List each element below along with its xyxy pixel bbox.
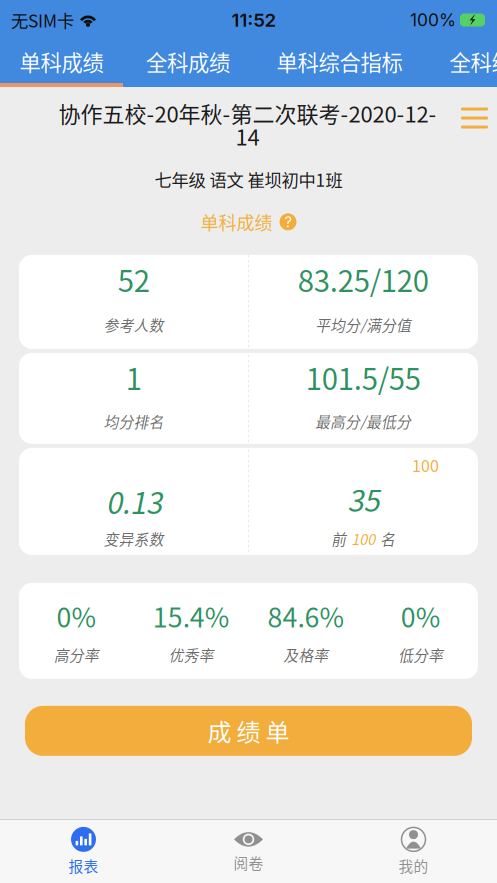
staticText: 0% [401, 596, 441, 635]
staticText: 平均分/满分值 [315, 314, 411, 335]
staticText: 最高分/最低分 [315, 410, 411, 432]
button[interactable]: 全科综合指标 [426, 40, 497, 83]
staticText: 单科成绩 [19, 46, 103, 77]
staticText: 全科综合指标 [449, 46, 497, 77]
button[interactable]: 报表 [1, 820, 166, 882]
staticText: 101.5/55 [306, 356, 421, 398]
button[interactable]: 单科成绩 [0, 40, 123, 83]
staticText: 35 [347, 478, 379, 520]
staticText: 单科综合指标 [276, 46, 402, 77]
staticText: 变异系数 [104, 528, 164, 549]
button[interactable]: 单科综合指标 [253, 40, 426, 83]
staticText: 100% [410, 9, 456, 30]
staticText: 无SIM卡 [11, 7, 74, 33]
staticText: 84.6% [267, 596, 344, 635]
staticText: 均分排名 [104, 410, 164, 432]
staticText: 15.4% [153, 596, 230, 635]
staticText: 0% [56, 596, 96, 635]
button[interactable]: 帮助 [279, 213, 296, 230]
button[interactable]: 我的 [331, 820, 496, 882]
button[interactable]: Menu [452, 97, 497, 139]
staticText: 我的 [398, 855, 428, 876]
staticText: 0.13 [106, 480, 162, 522]
staticText: 优秀率 [169, 644, 214, 665]
staticText: 单科成绩 [200, 209, 272, 235]
staticText: 名 [380, 528, 395, 549]
staticText: 1 [126, 356, 142, 398]
staticText: 14 [235, 120, 259, 152]
staticText: 报表 [68, 855, 98, 876]
staticText: 阅卷 [233, 852, 263, 873]
staticText: 及格率 [283, 644, 328, 665]
staticText: 低分率 [398, 644, 443, 665]
staticText: ? [284, 213, 291, 231]
button[interactable]: 全科成绩 [123, 40, 253, 83]
button[interactable]: 成 绩 单 [25, 706, 472, 756]
button[interactable]: 阅卷 [166, 820, 331, 882]
staticText: 协作五校-20年秋-第二次联考-2020-12- [58, 97, 436, 129]
staticText: 11:52 [231, 9, 276, 31]
staticText: 前 [331, 528, 346, 549]
staticText: 成 绩 单 [207, 713, 289, 748]
staticText: 100 [412, 453, 439, 477]
staticText: 七年级 语文 崔坝初中1班 [154, 167, 342, 192]
staticText: 全科成绩 [146, 46, 230, 77]
staticText: 高分率 [54, 644, 99, 665]
staticText: 参考人数 [104, 314, 164, 335]
staticText: 52 [118, 258, 150, 300]
staticText: 100 [351, 528, 375, 549]
staticText: 83.25/120 [298, 258, 429, 300]
